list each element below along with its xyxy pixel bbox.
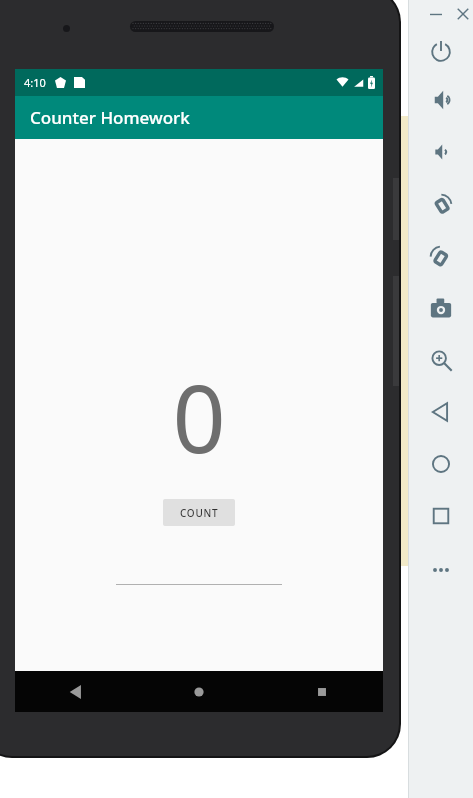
button[interactable]: Home xyxy=(137,671,260,712)
button[interactable]: Back xyxy=(424,395,458,429)
button[interactable]: Overview xyxy=(260,671,383,712)
staticText: 0 xyxy=(172,354,226,481)
button[interactable]: Zoom xyxy=(424,343,458,377)
button[interactable]: COUNT xyxy=(163,499,235,526)
button[interactable]: Close xyxy=(451,2,473,26)
staticText: Counter Homework xyxy=(30,106,190,129)
button[interactable]: Volume up xyxy=(424,83,458,117)
button[interactable]: More xyxy=(424,553,458,587)
staticText: COUNT xyxy=(180,506,219,520)
staticText: 4:10 xyxy=(24,75,46,90)
button[interactable]: Overview xyxy=(424,499,458,533)
button[interactable]: Minimize xyxy=(424,2,448,26)
button[interactable]: Take screenshot xyxy=(424,292,458,326)
button[interactable]: Back xyxy=(15,671,137,712)
button[interactable]: Home xyxy=(424,447,458,481)
button[interactable]: Rotate right xyxy=(424,240,458,274)
button[interactable]: Power xyxy=(424,35,458,69)
button[interactable]: Volume down xyxy=(424,135,458,169)
button[interactable]: Rotate left xyxy=(424,188,458,222)
